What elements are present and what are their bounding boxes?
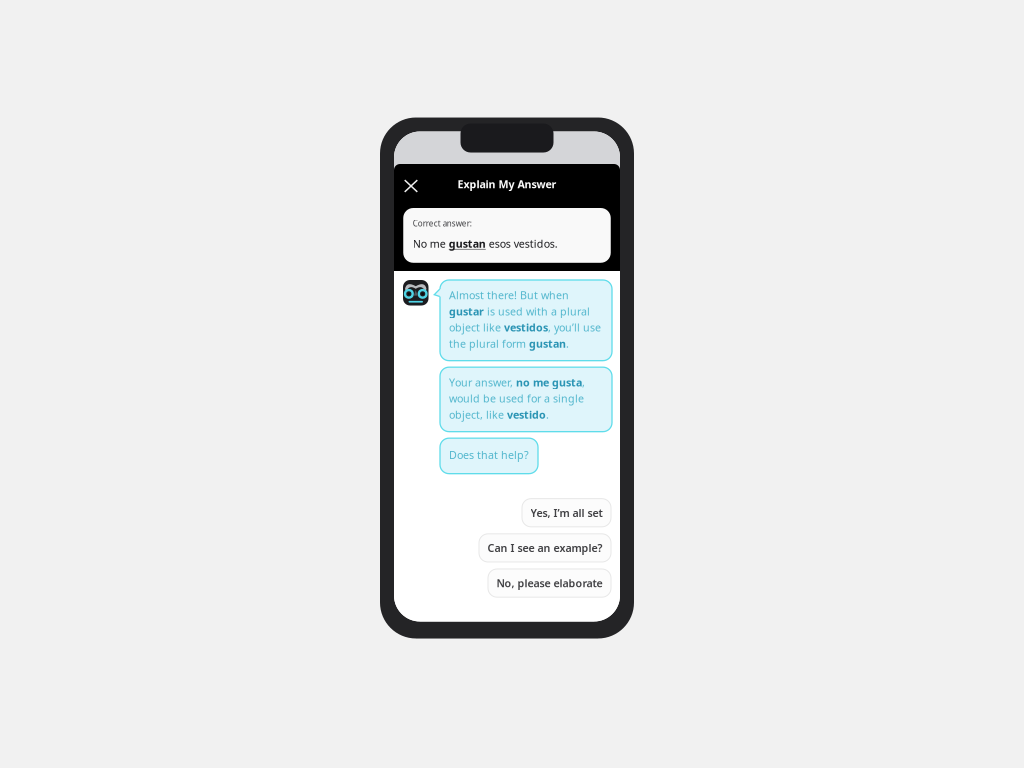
button[interactable]: Close [399,174,423,197]
staticText: Explain My Answer [457,177,556,191]
staticText: Does that help? [449,448,529,462]
button[interactable]: Yes, I’m all set [522,499,611,527]
staticText: Yes, I’m all set [530,506,602,520]
staticText: No, please elaborate [496,576,602,590]
staticText: Correct answer: [413,218,472,229]
staticText: Almost there! But when gustar is used wi… [449,288,601,351]
staticText: Your answer, no me gusta, would be used … [449,375,585,422]
staticText: Can I see an example? [487,541,602,555]
button[interactable]: No, please elaborate [488,569,611,597]
staticText: No me gustan esos vestidos. [413,237,558,251]
button[interactable]: Can I see an example? [479,534,611,562]
